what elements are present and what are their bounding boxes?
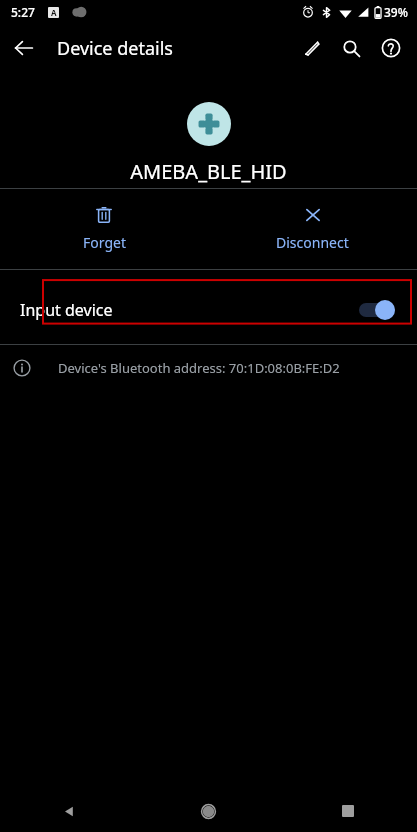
- staticText: Device details: [57, 36, 173, 61]
- staticText: Device's Bluetooth address: 70:1D:08:0B:…: [58, 359, 340, 377]
- button[interactable]: Recent apps: [278, 790, 417, 832]
- staticText: Forget: [83, 233, 126, 252]
- button[interactable]: Help: [371, 28, 411, 68]
- staticText: Disconnect: [276, 233, 349, 252]
- button[interactable]: Input device: [0, 276, 417, 344]
- button[interactable]: Disconnect: [208, 189, 417, 269]
- button[interactable]: Search: [331, 28, 371, 68]
- button[interactable]: Home: [139, 790, 278, 832]
- button[interactable]: Device's Bluetooth address: 70:1D:08:0B:…: [0, 345, 417, 391]
- button[interactable]: Back: [0, 790, 139, 832]
- staticText: 5:27: [11, 4, 35, 20]
- staticText: A: [51, 7, 57, 18]
- button[interactable]: Edit: [291, 28, 331, 68]
- button[interactable]: Forget: [0, 189, 208, 269]
- staticText: Input device: [20, 299, 359, 321]
- staticText: AMEBA_BLE_HID: [130, 158, 287, 185]
- button[interactable]: Back: [6, 30, 42, 66]
- staticText: 39%: [384, 4, 408, 20]
